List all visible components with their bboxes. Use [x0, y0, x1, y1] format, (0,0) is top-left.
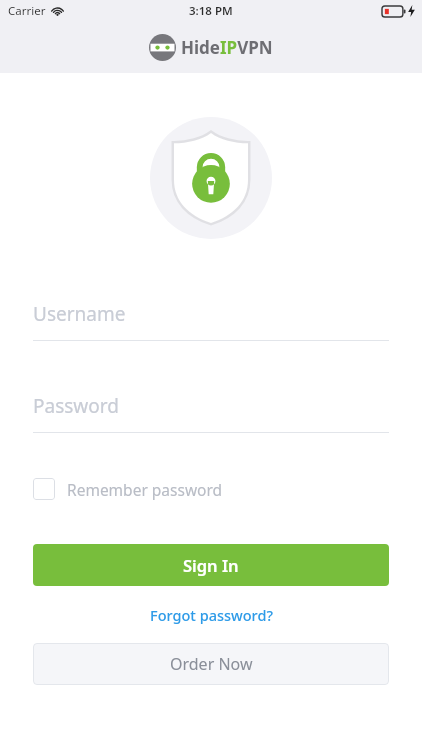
staticText: Remember password [67, 479, 223, 500]
staticText: HideIPVPN [181, 36, 273, 59]
staticText: Order Now [170, 653, 253, 675]
staticText: Sign In [183, 554, 239, 576]
staticText: Carrier [8, 3, 46, 19]
button[interactable]: Username [33, 301, 389, 341]
staticText: Password [33, 393, 119, 419]
button[interactable]: Remember password [33, 478, 223, 500]
staticText: Username [33, 301, 126, 327]
button[interactable]: Forgot password? [144, 603, 279, 627]
button[interactable]: Order Now [33, 643, 389, 685]
button[interactable]: Sign In [33, 544, 389, 586]
staticText: Forgot password? [150, 605, 273, 625]
button[interactable]: Password [33, 393, 389, 433]
staticText: 3:18 PM [189, 3, 233, 19]
